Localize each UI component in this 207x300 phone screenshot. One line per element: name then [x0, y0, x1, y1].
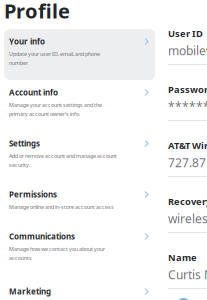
staticText: Add or remove account and manage account: [9, 152, 117, 160]
button[interactable]: Account info: [4, 80, 155, 131]
staticText: Manage your account settings and the: [9, 101, 102, 109]
staticText: Communications: [9, 231, 75, 242]
staticText: Account info: [9, 87, 58, 98]
staticText: Update your user ID, email, and phone: [9, 50, 100, 58]
staticText: primary account owner's info.: [9, 110, 80, 118]
staticText: Profile: [4, 0, 70, 24]
staticText: 727.871.0000: [168, 154, 207, 170]
staticText: accounts: [9, 254, 32, 262]
staticText: number: [9, 59, 28, 67]
staticText: wireless@example.com: [168, 210, 207, 226]
staticText: Permissions: [9, 189, 57, 200]
staticText: User ID: [168, 27, 203, 40]
staticText: Marketing: [9, 286, 51, 297]
staticText: Recovery email: [168, 195, 207, 208]
staticText: **************: [168, 98, 207, 114]
staticText: AT&T Wireless: [168, 139, 207, 152]
staticText: security.: [9, 161, 30, 169]
staticText: Manage online and in-store account acces…: [9, 203, 114, 211]
button[interactable]: Communications: [4, 224, 155, 279]
staticText: Settings: [9, 138, 40, 149]
staticText: mobilewireless22: [168, 42, 207, 58]
button[interactable]: Edit profile: [176, 298, 191, 300]
staticText: Manage how we contact you about your: [9, 245, 105, 253]
button[interactable]: Your info: [4, 29, 155, 80]
staticText: Name: [168, 251, 197, 264]
staticText: Your info: [9, 36, 45, 47]
staticText: Curtis Nelson: [168, 266, 207, 282]
button[interactable]: Permissions: [4, 182, 155, 224]
staticText: Password: [168, 83, 207, 96]
button[interactable]: Settings: [4, 131, 155, 182]
button[interactable]: Marketing: [4, 279, 155, 300]
